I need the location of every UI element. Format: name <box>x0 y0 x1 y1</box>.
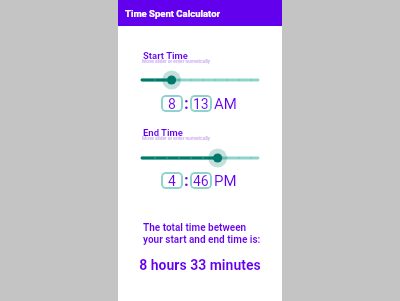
button[interactable]: 4 <box>161 172 183 189</box>
staticText: Time Spent Calculator <box>125 8 220 19</box>
staticText: PM <box>214 172 237 189</box>
staticText: Move slider or enter numerically <box>142 59 211 65</box>
staticText: Move slider or enter numerically <box>142 136 211 142</box>
staticText: 13 <box>193 96 209 112</box>
staticText: 8 <box>168 96 176 112</box>
staticText: The total time between your start and en… <box>143 222 261 246</box>
staticText: Start Time <box>143 50 188 61</box>
button[interactable]: 13 <box>190 95 212 112</box>
button[interactable]: Time slider <box>118 70 282 90</box>
staticText: 4 <box>168 173 176 189</box>
staticText: AM <box>214 95 237 112</box>
staticText: : <box>184 93 189 110</box>
staticText: 8 hours 33 minutes <box>118 257 282 273</box>
button[interactable]: 8 <box>161 95 183 112</box>
button[interactable]: Time Spent Calculator <box>118 0 282 26</box>
staticText: End Time <box>143 127 183 138</box>
button[interactable]: 46 <box>190 172 212 189</box>
staticText: : <box>184 170 189 187</box>
staticText: 46 <box>193 173 209 189</box>
button[interactable]: Time slider <box>118 148 282 168</box>
